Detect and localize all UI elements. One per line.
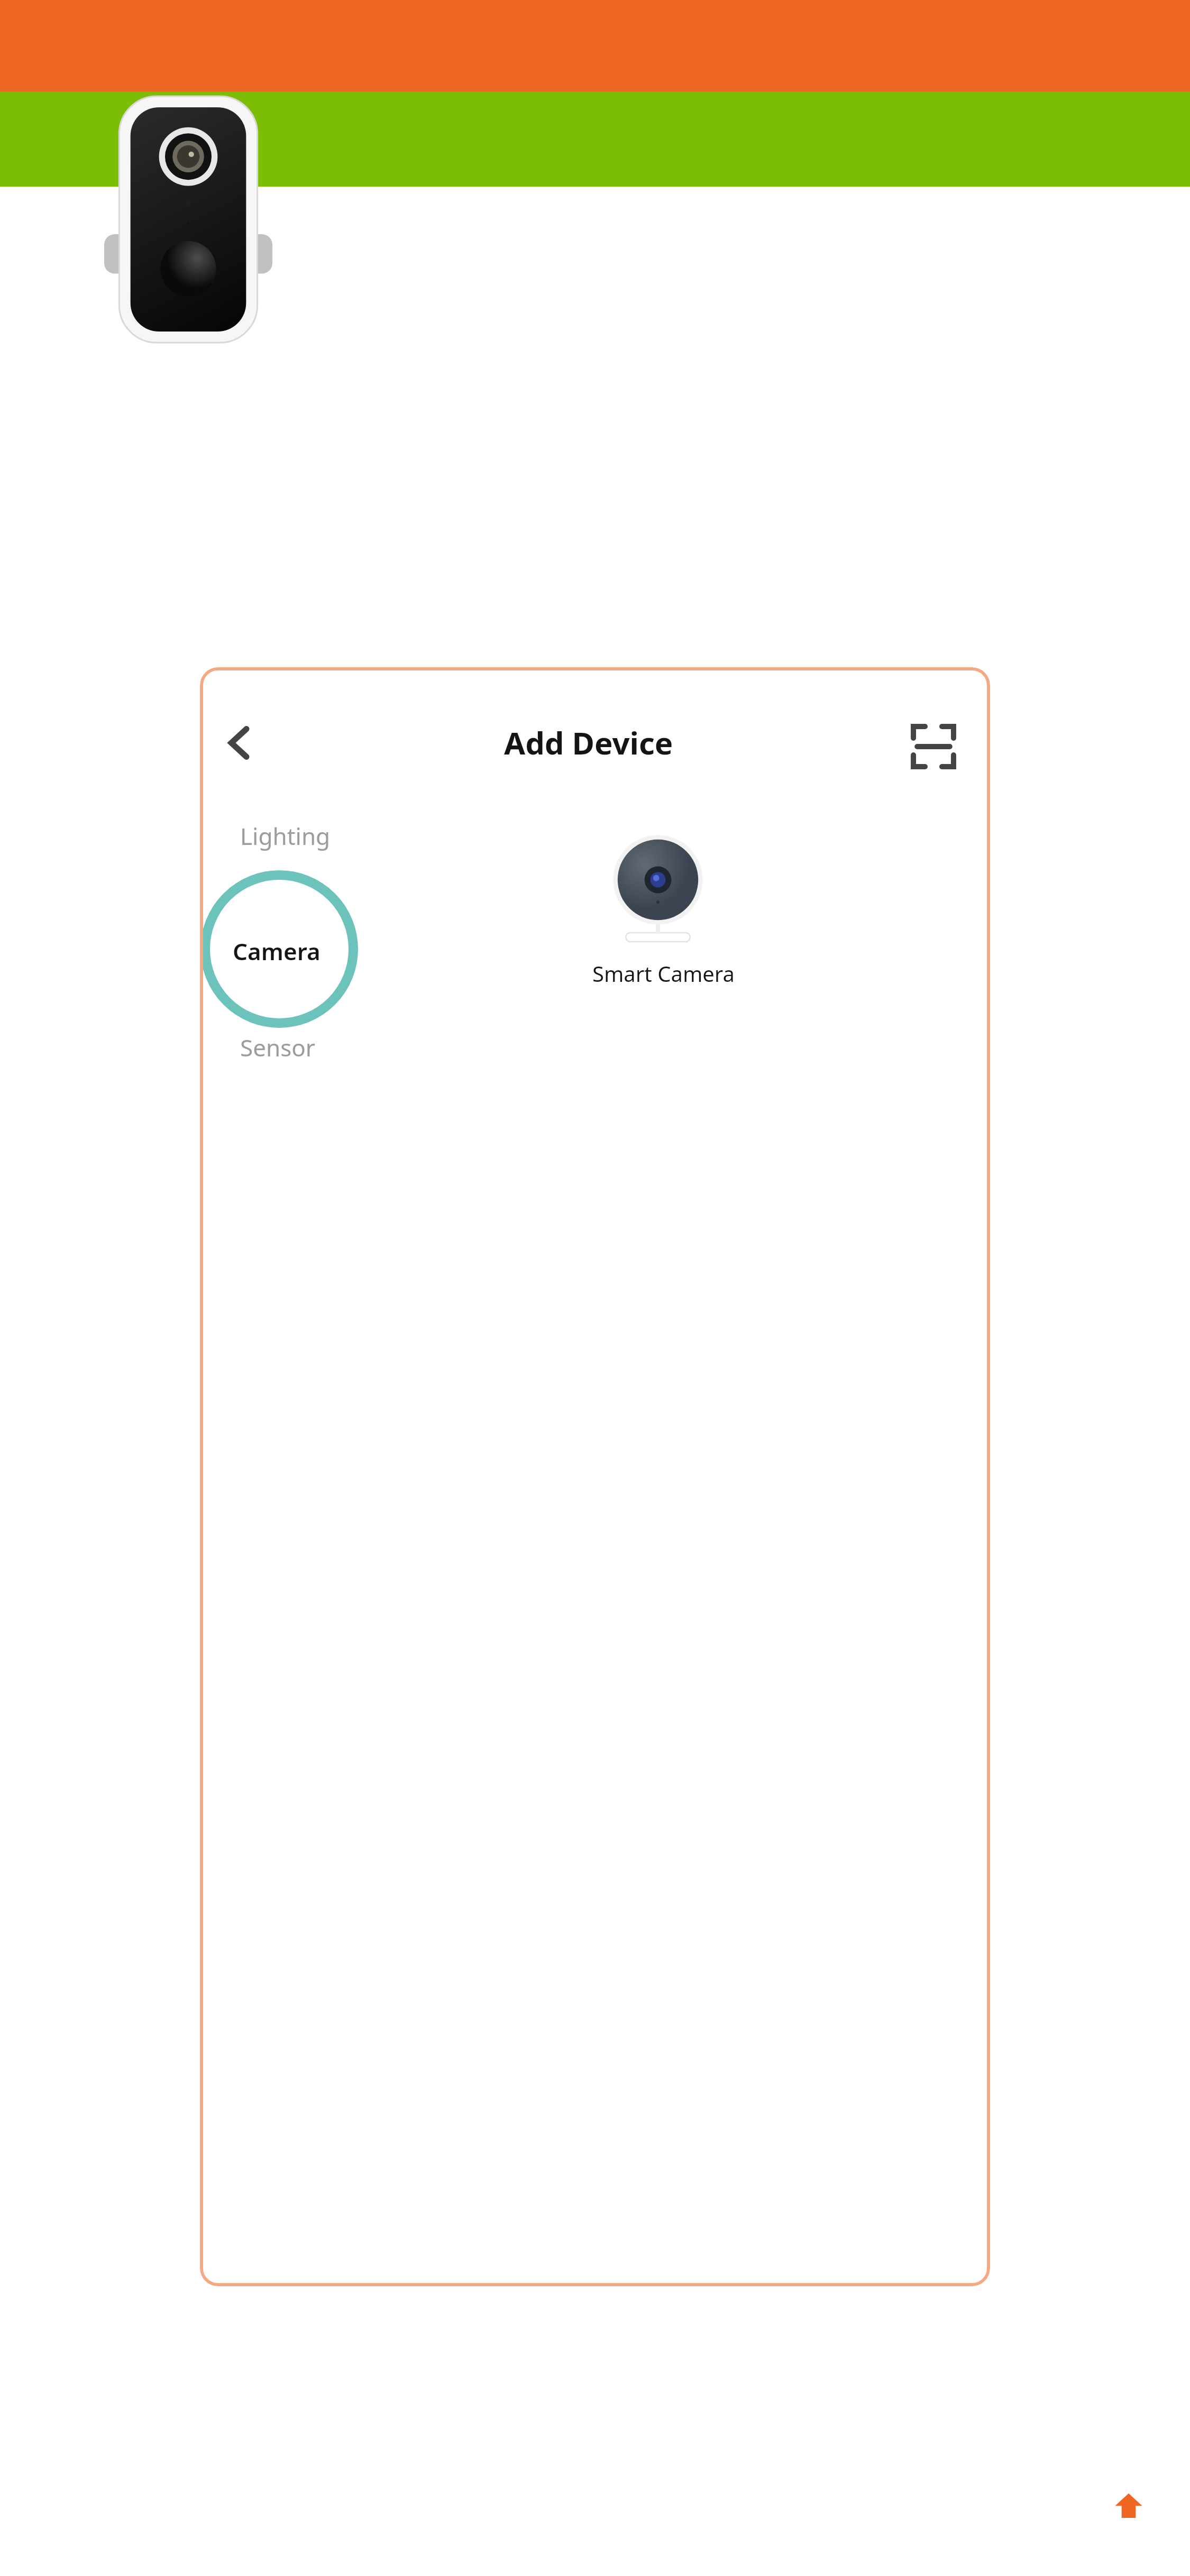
button[interactable]: Smart Camera [579,842,737,995]
button[interactable]: Back [212,714,270,772]
staticText: Smart Camera [592,959,735,988]
staticText: Sensor [240,1032,316,1063]
staticText: Lighting [240,820,331,852]
button[interactable]: Scroll to top [1110,2485,1148,2523]
button[interactable]: Scan QR code [904,717,963,776]
button[interactable]: Camera [200,870,359,1028]
staticText: Camera [233,935,321,967]
staticText: Add Device [504,722,673,763]
